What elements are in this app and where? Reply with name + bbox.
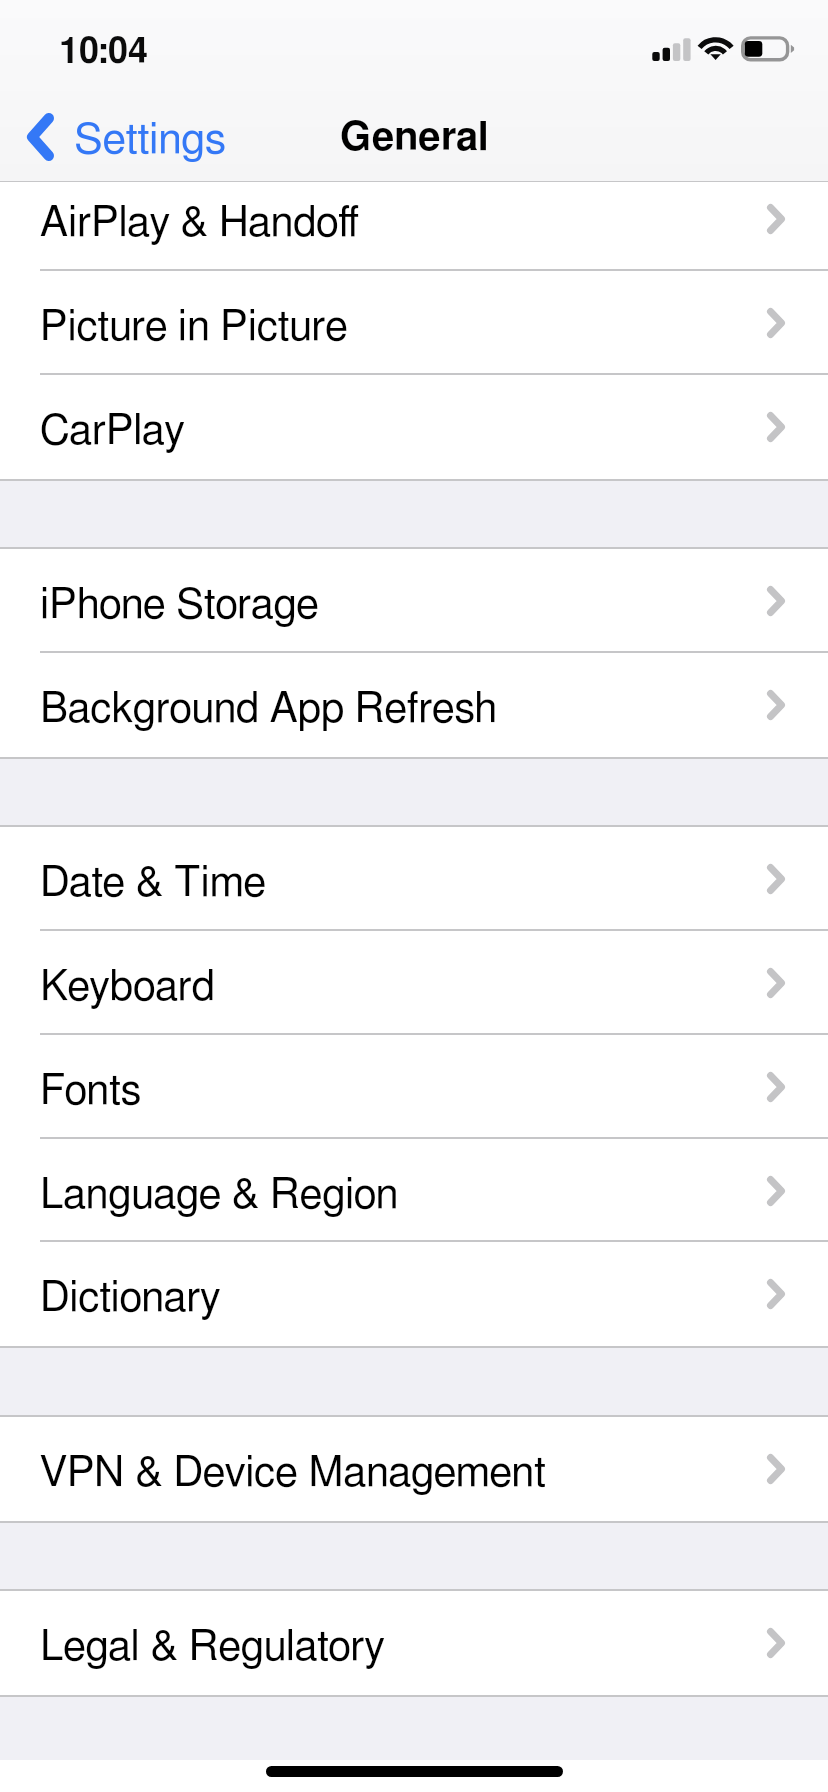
- button[interactable]: Date & Time: [0, 827, 828, 931]
- staticText: General: [340, 118, 489, 158]
- button[interactable]: iPhone Storage: [0, 549, 828, 653]
- button[interactable]: Background App Refresh: [0, 653, 828, 757]
- button[interactable]: AirPlay & Handoff: [0, 182, 828, 271]
- button[interactable]: Keyboard: [0, 931, 828, 1035]
- button[interactable]: CarPlay: [0, 375, 828, 479]
- button[interactable]: VPN & Device Management: [0, 1417, 828, 1521]
- staticText: iPhone Storage: [40, 584, 319, 626]
- staticText: Fonts: [40, 1070, 142, 1112]
- staticText: VPN & Device Management: [40, 1452, 546, 1494]
- staticText: Keyboard: [40, 966, 215, 1008]
- staticText: Background App Refresh: [40, 688, 498, 730]
- staticText: Legal & Regulatory: [40, 1626, 385, 1668]
- button[interactable]: Picture in Picture: [0, 271, 828, 375]
- staticText: AirPlay & Handoff: [40, 202, 359, 244]
- button[interactable]: Back to Settings: [0, 115, 242, 163]
- button[interactable]: Fonts: [0, 1035, 828, 1139]
- staticText: Dictionary: [40, 1277, 221, 1319]
- button[interactable]: Language & Region: [0, 1139, 828, 1242]
- staticText: Settings: [74, 119, 226, 162]
- button[interactable]: Dictionary: [0, 1242, 828, 1346]
- staticText: CarPlay: [40, 410, 185, 452]
- button[interactable]: Legal & Regulatory: [0, 1591, 828, 1695]
- staticText: Date & Time: [40, 862, 266, 904]
- staticText: Language & Region: [40, 1174, 399, 1216]
- staticText: Picture in Picture: [40, 306, 348, 348]
- staticText: 10:04: [59, 34, 149, 70]
